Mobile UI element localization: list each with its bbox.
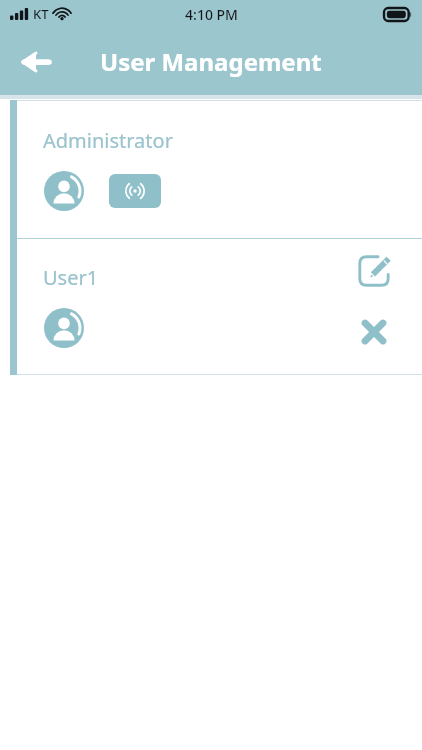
staticText: User Management xyxy=(100,45,322,78)
staticText: Administrator xyxy=(43,127,173,154)
button[interactable]: Administrator xyxy=(17,101,422,238)
button[interactable]: Edit user xyxy=(354,251,394,291)
staticText: KT xyxy=(33,5,49,23)
button[interactable]: User1 xyxy=(17,239,422,374)
button[interactable]: Back xyxy=(12,38,60,86)
button[interactable]: User avatar xyxy=(43,307,85,349)
button[interactable]: Delete user xyxy=(354,312,394,352)
staticText: User1 xyxy=(43,264,99,291)
staticText: 4:10 PM xyxy=(185,5,238,24)
button[interactable]: RFID card xyxy=(109,174,161,208)
button[interactable]: User avatar xyxy=(43,170,85,212)
